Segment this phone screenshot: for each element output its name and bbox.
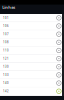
staticText: 140: [3, 81, 9, 85]
button[interactable]: 107: [0, 30, 64, 38]
button[interactable]: 140: [0, 79, 64, 87]
staticText: 107: [3, 32, 9, 36]
staticText: 130: [3, 65, 9, 68]
staticText: 133: [3, 73, 9, 77]
button[interactable]: 130: [0, 63, 64, 71]
staticText: 121: [3, 57, 9, 60]
staticText: 110: [3, 49, 9, 52]
staticText: 106: [3, 24, 9, 28]
staticText: 108: [3, 41, 9, 44]
button[interactable]: 101: [0, 14, 64, 22]
staticText: 101: [3, 16, 9, 20]
button[interactable]: 121: [0, 55, 64, 63]
button[interactable]: 108: [0, 38, 64, 47]
button[interactable]: 106: [0, 22, 64, 30]
staticText: Linhas: [2, 5, 15, 10]
staticText: 142: [3, 89, 9, 93]
button[interactable]: 142: [0, 87, 64, 96]
button[interactable]: 110: [0, 47, 64, 55]
button[interactable]: 133: [0, 71, 64, 79]
